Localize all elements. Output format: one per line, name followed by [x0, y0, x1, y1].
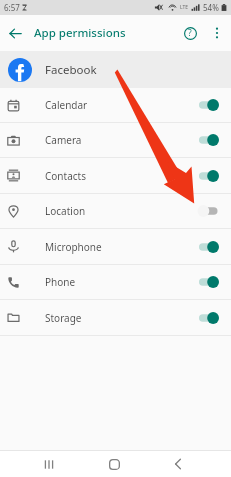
- button[interactable]: Recent apps: [27, 451, 71, 477]
- button[interactable]: Facebook: [0, 51, 231, 88]
- button[interactable]: Back: [156, 451, 200, 477]
- button[interactable]: Permission allowed: [199, 169, 219, 183]
- button[interactable]: Permission allowed: [199, 98, 219, 112]
- button[interactable]: Permission allowed: [199, 240, 219, 254]
- staticText: ?: [188, 27, 192, 39]
- button[interactable]: More options: [204, 20, 230, 46]
- button[interactable]: Storage: [0, 300, 231, 335]
- staticText: Calendar: [45, 98, 88, 112]
- button[interactable]: Calendar: [0, 88, 231, 122]
- button[interactable]: Permission denied: [199, 204, 219, 218]
- staticText: Contacts: [45, 169, 86, 183]
- staticText: Storage: [45, 311, 82, 325]
- button[interactable]: Contacts: [0, 158, 231, 193]
- button[interactable]: Permission allowed: [199, 311, 219, 325]
- button[interactable]: Help: [176, 19, 204, 47]
- staticText: LTE: [180, 4, 189, 11]
- button[interactable]: Microphone: [0, 229, 231, 264]
- button[interactable]: Home: [92, 451, 136, 477]
- staticText: Location: [45, 204, 86, 218]
- staticText: Facebook: [45, 62, 97, 78]
- staticText: 54%: [203, 2, 219, 13]
- button[interactable]: Permission allowed: [199, 133, 219, 147]
- button[interactable]: Navigate up: [0, 18, 31, 49]
- button[interactable]: Location: [0, 194, 231, 228]
- button[interactable]: Permission allowed: [199, 275, 219, 289]
- staticText: Phone: [45, 275, 76, 289]
- staticText: 6:57: [4, 2, 20, 13]
- button[interactable]: Phone: [0, 265, 231, 299]
- staticText: Camera: [45, 133, 82, 147]
- staticText: App permissions: [34, 25, 126, 41]
- staticText: Microphone: [45, 240, 102, 254]
- button[interactable]: Camera: [0, 123, 231, 157]
